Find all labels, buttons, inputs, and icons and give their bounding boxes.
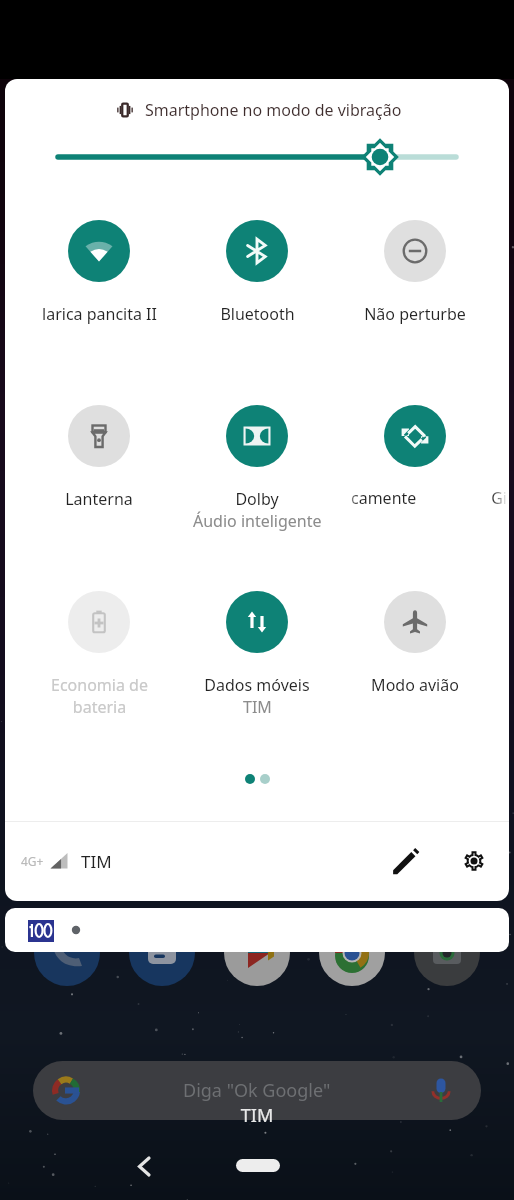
staticText: Bluetooth: [220, 303, 295, 325]
staticText: larica pancita II: [42, 303, 157, 325]
button[interactable]: Não perturbe: [337, 213, 493, 323]
staticText: Dados móveis: [204, 674, 310, 696]
button[interactable]: [5, 908, 509, 952]
button[interactable]: Configurações: [451, 838, 497, 884]
button[interactable]: Economia de bateria: [21, 584, 177, 694]
button[interactable]: Bluetooth: [179, 213, 335, 323]
staticText: TIM: [243, 696, 272, 718]
button[interactable]: larica pancita II: [21, 213, 177, 323]
staticText: Dolby: [235, 488, 279, 510]
staticText: Smartphone no modo de vibração: [145, 99, 402, 121]
button[interactable]: [337, 398, 493, 508]
staticText: TIM: [81, 850, 112, 873]
button[interactable]: Dolby: [179, 398, 335, 508]
staticText: Não perturbe: [364, 303, 466, 325]
staticText: Economia de bateria: [51, 674, 148, 718]
button[interactable]: Diga "Ok Google": [33, 1061, 481, 1120]
staticText: Lanterna: [65, 488, 133, 510]
staticText: 4G+: [21, 853, 44, 869]
staticText: camente Girar automaticamente: [351, 487, 508, 509]
button[interactable]: Dados móveis: [179, 584, 335, 694]
button[interactable]: Modo avião: [337, 584, 493, 694]
staticText: TIM: [0, 1103, 514, 1128]
button[interactable]: Lanterna: [21, 398, 177, 508]
staticText: Diga "Ok Google": [183, 1078, 331, 1103]
button[interactable]: Editar: [383, 838, 429, 884]
staticText: Modo avião: [371, 674, 459, 696]
staticText: Áudio inteligente: [193, 510, 322, 532]
